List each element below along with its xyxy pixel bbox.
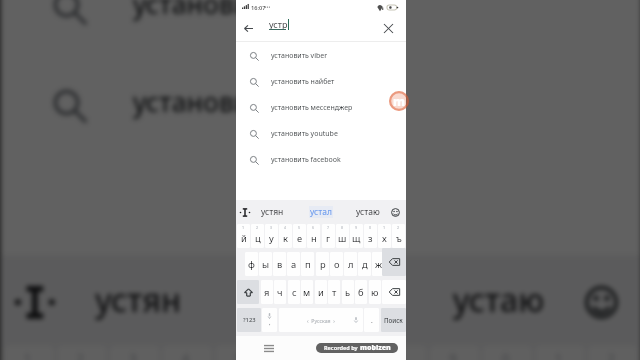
- staticText: с: [292, 286, 297, 299]
- button[interactable]: Backspace: [382, 280, 406, 304]
- button[interactable]: установить мессенджер: [236, 95, 406, 121]
- staticText: 9: [355, 225, 358, 230]
- button[interactable]: устян: [65, 255, 208, 346]
- button[interactable]: т: [328, 280, 340, 304]
- button[interactable]: 7: [322, 224, 335, 248]
- staticText: ю: [371, 286, 379, 299]
- button[interactable]: Backspace: [382, 248, 406, 276]
- button[interactable]: установить facebook: [236, 147, 406, 173]
- button[interactable]: устаю: [426, 255, 569, 346]
- staticText: 8: [396, 349, 408, 360]
- staticText: устян: [261, 206, 284, 218]
- button[interactable]: Emoji: [388, 200, 402, 224]
- button[interactable]: Emoji: [573, 255, 626, 346]
- staticText: ‹ Русская ›: [307, 317, 335, 324]
- button[interactable]: Clear search: [379, 19, 397, 37]
- button[interactable]: установить youtube: [236, 121, 406, 147]
- button[interactable]: установить facebook: [1, 56, 640, 154]
- button[interactable]: 4: [279, 224, 292, 248]
- button[interactable]: 5: [216, 346, 264, 360]
- button[interactable]: устал: [249, 255, 393, 346]
- button[interactable]: и: [315, 280, 327, 304]
- staticText: 5: [298, 225, 301, 230]
- button[interactable]: Text cursor: [5, 255, 61, 346]
- button[interactable]: ж: [372, 252, 385, 276]
- button[interactable]: 3: [265, 224, 278, 248]
- button[interactable]: установить youtube: [1, 0, 640, 56]
- button[interactable]: 9: [350, 224, 363, 248]
- button[interactable]: устян: [253, 200, 291, 224]
- button[interactable]: п: [301, 252, 314, 276]
- button[interactable]: ч: [274, 280, 286, 304]
- button[interactable]: 1: [378, 224, 391, 248]
- button[interactable]: установить найбет: [236, 69, 406, 95]
- staticText: м: [303, 286, 311, 299]
- button[interactable]: 0: [364, 224, 377, 248]
- button[interactable]: 8: [336, 224, 349, 248]
- staticText: ф: [248, 258, 255, 271]
- button[interactable]: 7: [325, 346, 374, 360]
- button[interactable]: 6: [268, 346, 317, 360]
- staticText: 1: [242, 225, 245, 230]
- staticText: ц: [255, 232, 261, 245]
- staticText: г: [326, 232, 331, 245]
- button[interactable]: ?123: [237, 308, 261, 332]
- button[interactable]: ы: [259, 252, 272, 276]
- staticText: о: [334, 258, 340, 271]
- button[interactable]: установить viber: [236, 43, 406, 69]
- button[interactable]: ь: [342, 280, 354, 304]
- button[interactable]: л: [344, 252, 357, 276]
- button[interactable]: б: [355, 280, 367, 304]
- button[interactable]: Поиск: [381, 308, 406, 332]
- staticText: я: [264, 286, 270, 299]
- button[interactable]: ‹ Русская ›: [279, 308, 363, 332]
- button[interactable]: Text cursor: [237, 200, 252, 224]
- staticText: х: [382, 232, 387, 245]
- button[interactable]: 5: [293, 224, 306, 248]
- button[interactable]: а: [287, 252, 300, 276]
- staticText: й: [241, 232, 247, 245]
- staticText: 2: [256, 225, 259, 230]
- staticText: з: [368, 232, 373, 245]
- button[interactable]: устаю: [349, 200, 387, 224]
- button[interactable]: д: [358, 252, 371, 276]
- button[interactable]: устал: [302, 200, 340, 224]
- button[interactable]: Shift: [237, 280, 259, 304]
- button[interactable]: 6: [307, 224, 320, 248]
- button[interactable]: в: [273, 252, 286, 276]
- button[interactable]: р: [316, 252, 329, 276]
- button[interactable]: Voice input: [262, 308, 277, 332]
- button[interactable]: 1: [237, 224, 250, 248]
- button[interactable]: я: [261, 280, 273, 304]
- staticText: 3: [270, 225, 273, 230]
- button[interactable]: 2: [251, 224, 264, 248]
- staticText: установить facebook: [271, 155, 341, 165]
- button[interactable]: .: [364, 308, 379, 332]
- button[interactable]: 8: [377, 346, 426, 360]
- staticText: устр: [269, 18, 288, 30]
- button[interactable]: м: [301, 280, 313, 304]
- button[interactable]: ю: [369, 280, 381, 304]
- staticText: mobizen: [360, 343, 391, 353]
- button[interactable]: с: [288, 280, 300, 304]
- button[interactable]: Mobizen recorder: [389, 91, 409, 111]
- button[interactable]: о: [330, 252, 343, 276]
- button[interactable]: 2: [392, 224, 405, 248]
- button[interactable]: Recent apps: [261, 340, 277, 356]
- staticText: т: [332, 286, 337, 299]
- button[interactable]: ф: [245, 252, 258, 276]
- button[interactable]: Back: [239, 19, 257, 37]
- button[interactable]: Mobizen watermark: [316, 343, 398, 353]
